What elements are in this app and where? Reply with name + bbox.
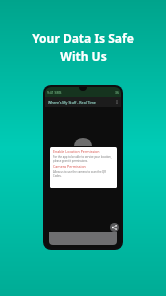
staticText: Camera Permission: [53, 164, 86, 169]
button[interactable]: Share: [110, 223, 119, 232]
staticText: Your Data Is Safe: [32, 30, 134, 46]
staticText: Allow us to use the camera to scan the Q…: [53, 170, 106, 178]
staticText: With Us: [60, 48, 107, 64]
button[interactable]: Enable Location Permission: [50, 147, 117, 188]
staticText: Where's My Stuff - Real Time: [48, 100, 96, 105]
staticText: Enable Location Permission: [53, 149, 100, 154]
staticText: For the app to be able to service your l…: [53, 155, 112, 163]
staticText: 9:41 SMS: [47, 90, 62, 95]
staticText: 36: [115, 90, 119, 95]
button[interactable]: Where's My Stuff - Real Time: [45, 97, 121, 107]
